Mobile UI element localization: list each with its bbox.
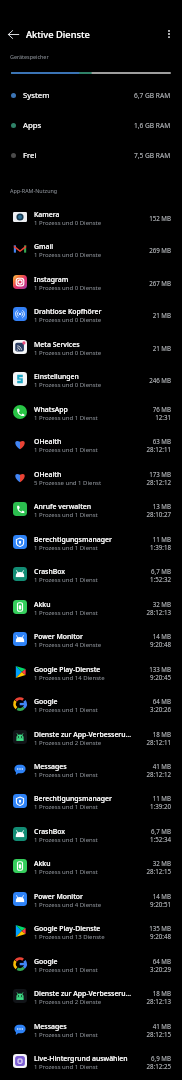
staticText: 1 Prozess und 0 Dienste [34, 316, 102, 324]
staticText: 9:20:48 [149, 640, 171, 648]
staticText: 133 MB [149, 665, 171, 673]
staticText: 64 MB [152, 957, 171, 965]
button[interactable]: Weitere Optionen [156, 21, 182, 47]
staticText: 5 Prozesse und 1 Dienst [34, 479, 102, 487]
staticText: 1 Prozess und 1 Dienst [34, 414, 98, 422]
button[interactable]: Google [0, 948, 182, 982]
staticText: Google Play-Dienste [34, 924, 101, 933]
staticText: 28:12:15 [146, 867, 171, 875]
button[interactable]: Messages [0, 1013, 182, 1047]
staticText: CrashBox [34, 827, 66, 836]
staticText: 1 Prozess und 0 Dienste [34, 284, 102, 292]
staticText: 1 Prozess und 2 Dienste [34, 739, 102, 747]
staticText: 267 MB [149, 279, 171, 287]
button[interactable]: Dienste zur App-Verbesseru… [0, 980, 182, 1014]
button[interactable]: Dienste zur App-Verbesseru… [0, 721, 182, 755]
button[interactable]: CrashBox [0, 558, 182, 592]
staticText: 1 Prozess und 1 Dienst [34, 803, 98, 811]
button[interactable]: Power Monitor [0, 623, 182, 657]
button[interactable]: Messages [0, 753, 182, 787]
staticText: 1 Prozess und 1 Dienst [34, 609, 98, 617]
staticText: 1 Prozess und 4 Dienste [34, 901, 102, 909]
staticText: 1:52:32 [149, 575, 171, 583]
button[interactable]: Google [0, 688, 182, 722]
staticText: Berechtigungsmanager [34, 794, 112, 803]
staticText: 28:12:12 [146, 478, 171, 486]
staticText: 1 Prozess und 1 Dienst [34, 1063, 98, 1071]
staticText: 246 MB [149, 376, 171, 384]
staticText: 1 Prozess und 0 Dienste [34, 251, 102, 259]
staticText: 1 Prozess und 1 Dienst [34, 706, 98, 714]
staticText: 1:39:18 [149, 543, 171, 551]
button[interactable]: Kamera [0, 201, 182, 235]
staticText: 1 Prozess und 1 Dienst [34, 1031, 98, 1039]
button[interactable]: Akku [0, 591, 182, 625]
staticText: Google [34, 697, 58, 706]
button[interactable]: System [0, 80, 182, 110]
staticText: Kamera [34, 210, 60, 219]
button[interactable]: Zurück [0, 21, 26, 47]
button[interactable]: Apps [0, 110, 182, 140]
staticText: 269 MB [149, 246, 171, 254]
button[interactable]: Frei [0, 140, 182, 170]
staticText: Apps [23, 120, 42, 131]
staticText: 9:20:45 [149, 673, 171, 681]
staticText: Instagram [34, 275, 69, 284]
staticText: 14 MB [152, 632, 171, 640]
button[interactable]: Live-Hintergrund auswählen [0, 1045, 182, 1079]
staticText: 32 MB [152, 859, 171, 867]
staticText: Power Monitor [34, 892, 83, 901]
staticText: 7,5 GB RAM [134, 151, 171, 160]
staticText: 28:12:13 [146, 997, 171, 1005]
button[interactable]: Berechtigungsmanager [0, 785, 182, 819]
staticText: 63 MB [152, 437, 171, 445]
button[interactable]: OHealth [0, 428, 182, 462]
button[interactable]: Instagram [0, 266, 182, 300]
button[interactable]: Google Play-Dienste [0, 656, 182, 690]
staticText: 11 MB [152, 535, 171, 543]
button[interactable]: Anrufe verwalten [0, 493, 182, 527]
button[interactable]: Google Play-Dienste [0, 915, 182, 949]
button[interactable]: Meta Services [0, 331, 182, 365]
staticText: 1:39:20 [149, 802, 171, 810]
staticText: Messages [34, 762, 67, 771]
button[interactable]: Drahtlose Kopfhörer [0, 298, 182, 332]
staticText: System [23, 90, 50, 101]
staticText: Dienste zur App-Verbesseru… [34, 730, 132, 739]
staticText: 1 Prozess und 1 Dienst [34, 544, 98, 552]
staticText: 3:20:29 [149, 965, 171, 973]
staticText: 14 MB [152, 892, 171, 900]
staticText: 9:20:51 [149, 900, 171, 908]
button[interactable]: OHealth [0, 461, 182, 495]
staticText: OHealth [34, 437, 62, 446]
staticText: Frei [23, 150, 37, 161]
staticText: Berechtigungsmanager [34, 535, 112, 544]
staticText: CrashBox [34, 567, 66, 576]
staticText: Einstellungen [34, 372, 79, 381]
button[interactable]: Berechtigungsmanager [0, 526, 182, 560]
staticText: 1 Prozess und 1 Dienst [34, 576, 98, 584]
staticText: 6,7 MB [151, 827, 171, 835]
staticText: WhatsApp [34, 405, 68, 414]
staticText: Akku [34, 859, 51, 868]
staticText: 11 MB [152, 794, 171, 802]
staticText: 135 MB [149, 924, 171, 932]
staticText: 28:12:15 [146, 1030, 171, 1038]
button[interactable]: Power Monitor [0, 883, 182, 917]
button[interactable]: WhatsApp [0, 396, 182, 430]
button[interactable]: CrashBox [0, 818, 182, 852]
staticText: 6,7 GB RAM [134, 91, 171, 100]
staticText: 28:12:11 [146, 738, 171, 746]
staticText: 1 Prozess und 1 Dienst [34, 868, 98, 876]
staticText: 1 Prozess und 14 Dienste [34, 674, 105, 682]
staticText: Aktive Dienste [26, 28, 90, 41]
staticText: 64 MB [152, 697, 171, 705]
staticText: 1 Prozess und 0 Dienste [34, 219, 102, 227]
staticText: App-RAM-Nutzung [10, 187, 58, 194]
staticText: Dienste zur App-Verbesseru… [34, 989, 132, 998]
staticText: Power Monitor [34, 632, 83, 641]
staticText: 21 MB [152, 311, 171, 319]
button[interactable]: Einstellungen [0, 363, 182, 397]
button[interactable]: Akku [0, 850, 182, 884]
button[interactable]: Gmail [0, 233, 182, 267]
